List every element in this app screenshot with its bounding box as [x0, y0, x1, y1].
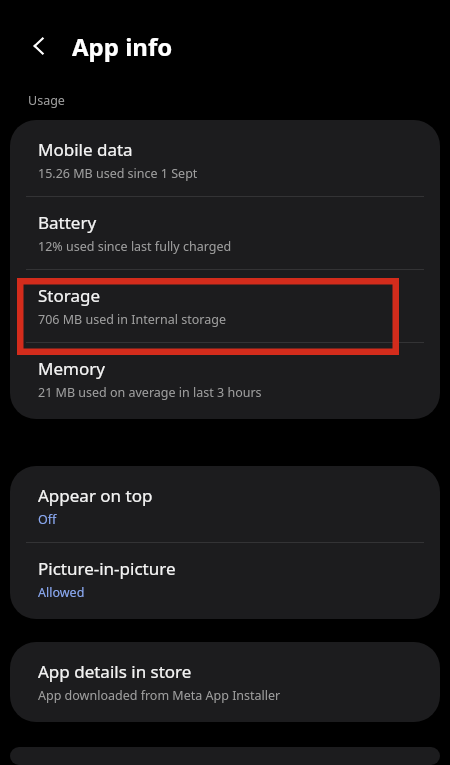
staticText: Storage — [38, 284, 101, 307]
staticText: Usage — [28, 92, 65, 109]
button[interactable]: App details in store — [10, 646, 440, 718]
button[interactable]: Battery — [10, 197, 440, 269]
staticText: 21 MB used on average in last 3 hours — [38, 384, 262, 401]
button[interactable]: Picture-in-picture — [10, 543, 440, 615]
staticText: Memory — [38, 357, 105, 380]
staticText: Allowed — [38, 584, 85, 601]
staticText: Mobile data — [38, 138, 133, 161]
staticText: Off — [38, 511, 57, 528]
staticText: Picture-in-picture — [38, 557, 176, 580]
button[interactable]: Appear on top — [10, 470, 440, 542]
button[interactable]: Memory — [10, 343, 440, 415]
staticText: Battery — [38, 211, 97, 234]
staticText: App downloaded from Meta App Installer — [38, 687, 281, 704]
button[interactable]: Storage — [10, 270, 440, 342]
button[interactable]: Mobile data — [10, 124, 440, 196]
staticText: App details in store — [38, 660, 192, 683]
button[interactable]: Back — [18, 24, 62, 68]
staticText: 12% used since last fully charged — [38, 238, 232, 255]
staticText: 706 MB used in Internal storage — [38, 311, 226, 328]
staticText: App info — [72, 30, 173, 63]
staticText: Appear on top — [38, 484, 153, 507]
staticText: 15.26 MB used since 1 Sept — [38, 165, 198, 182]
